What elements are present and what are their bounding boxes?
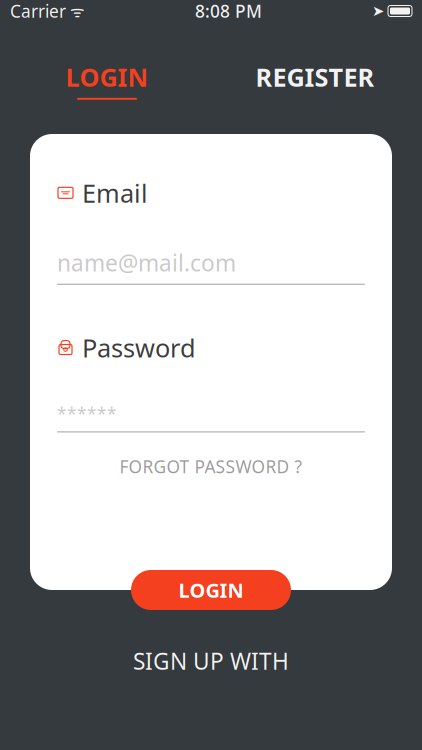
staticText: Password [82,331,196,364]
staticText: 8:08 PM [195,0,262,22]
staticText: SIGN UP WITH [133,646,289,676]
button[interactable]: REGISTER [240,58,390,102]
button[interactable]: LOGIN [131,570,291,610]
staticText: ᯤ [66,0,85,22]
staticText: Carrier [10,0,66,22]
staticText: LOGIN [65,60,148,94]
staticText: FORGOT PASSWORD ? [119,455,302,478]
staticText: LOGIN [178,577,243,603]
staticText: ➤ [372,3,384,19]
button[interactable]: FORGOT PASSWORD ? [57,454,365,478]
button[interactable]: LOGIN [32,58,182,102]
staticText: Email [82,176,148,210]
staticText: REGISTER [255,60,374,94]
staticText: name@mail.com [57,248,236,278]
staticText: ****** [57,402,117,425]
